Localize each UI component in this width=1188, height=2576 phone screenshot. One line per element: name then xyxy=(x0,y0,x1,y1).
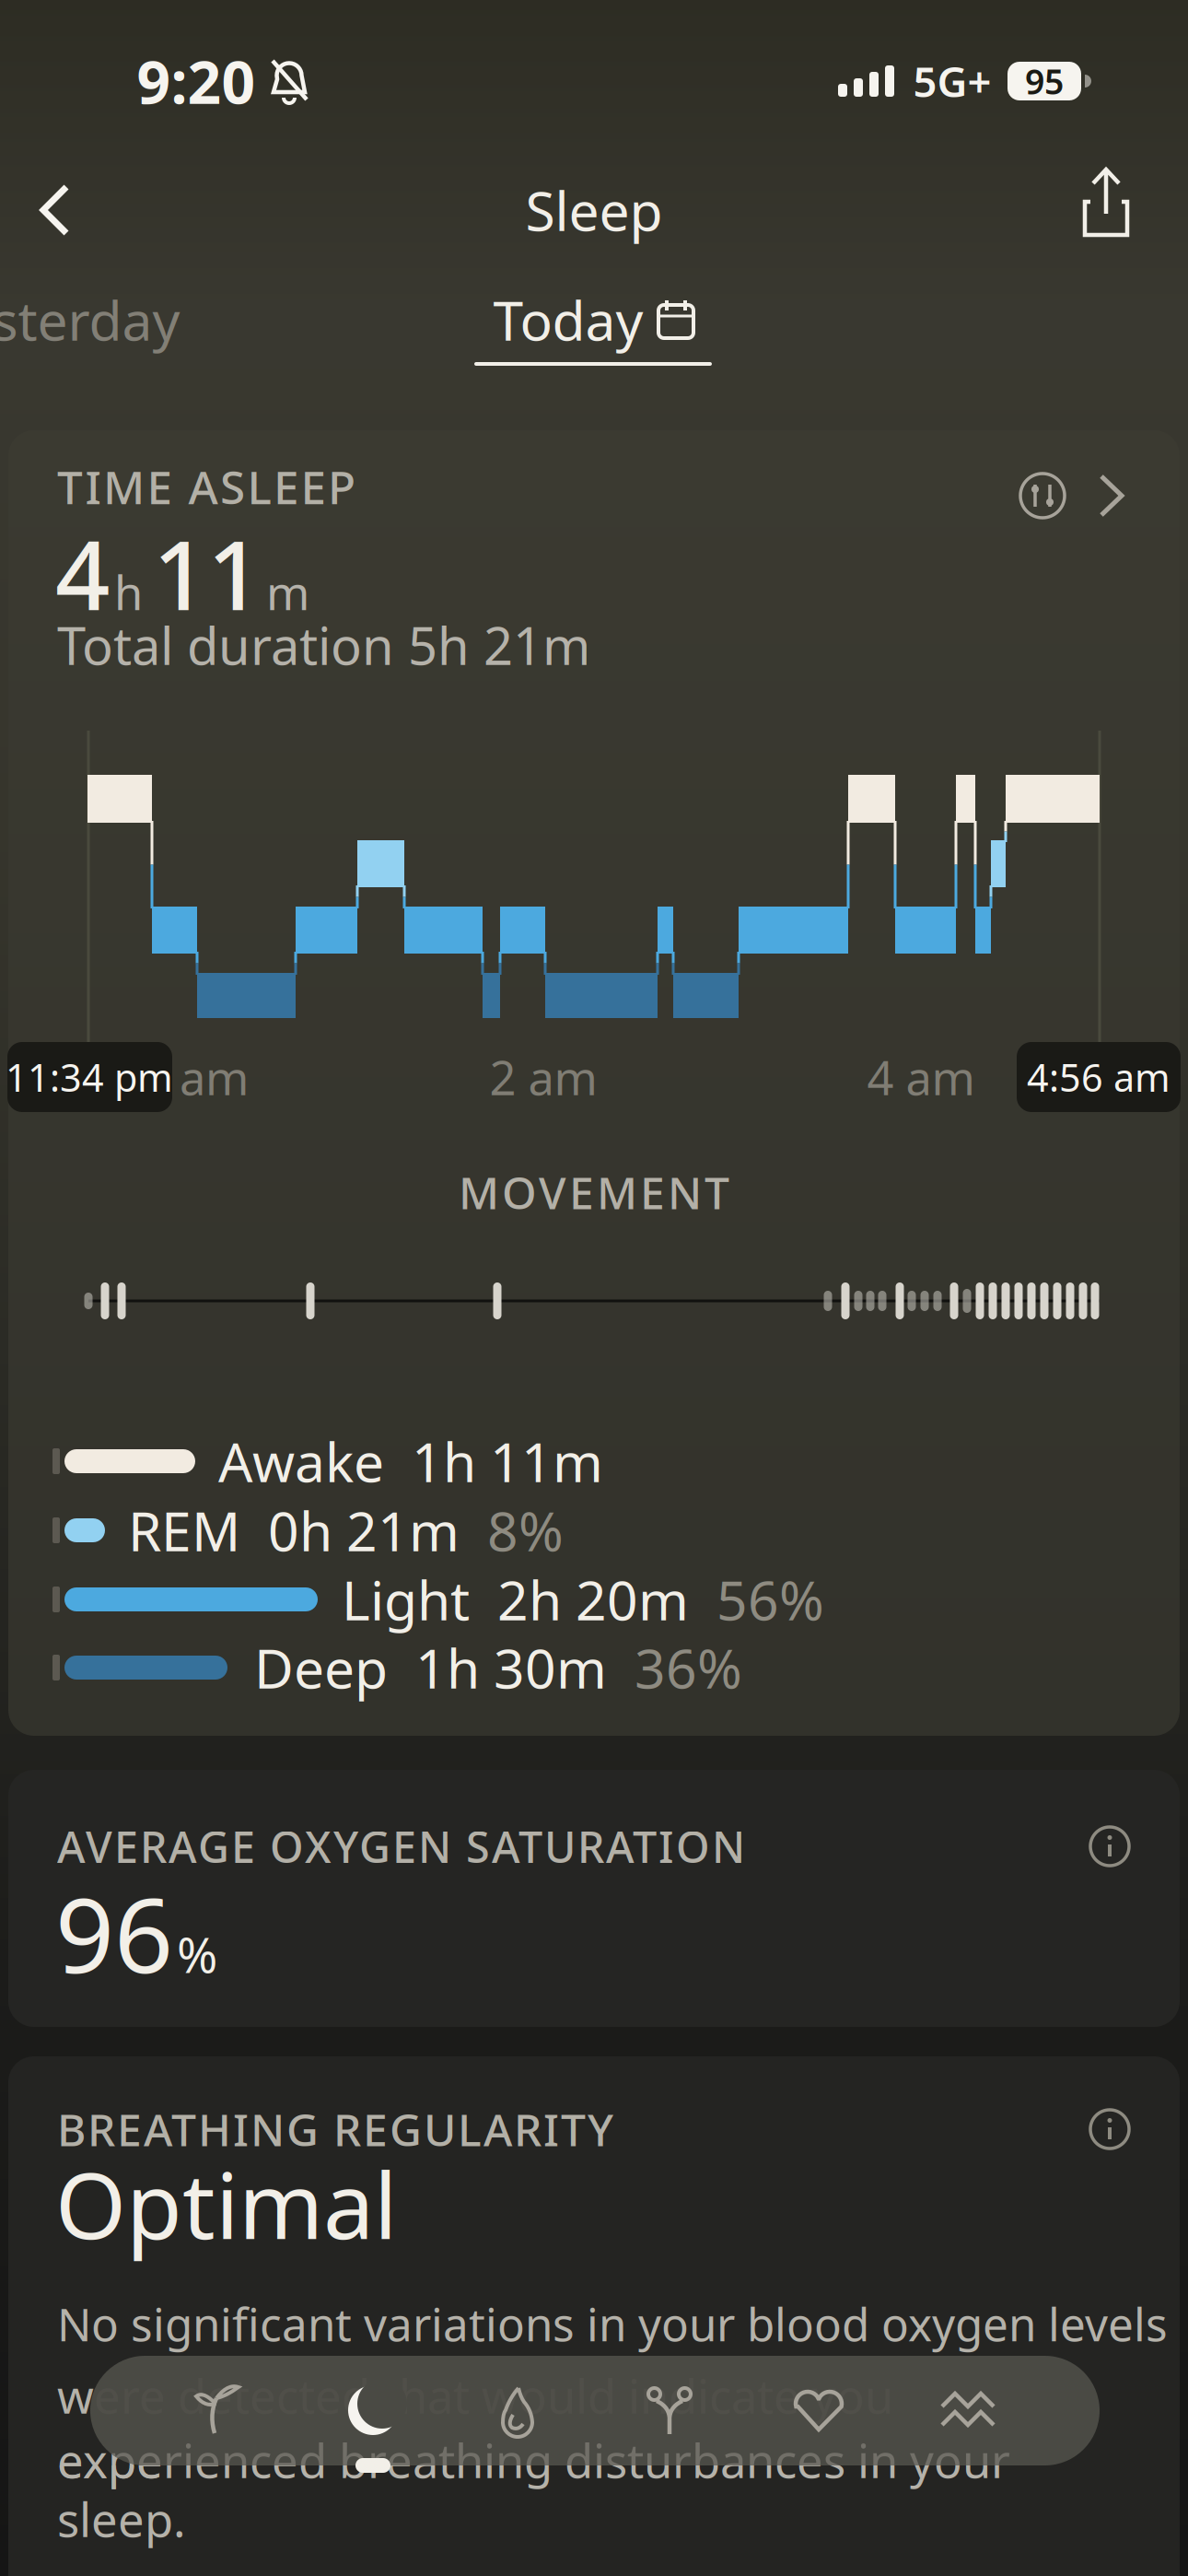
staticText: 1h 30m xyxy=(415,1632,607,1703)
staticText: REM xyxy=(128,1494,240,1566)
staticText: 36% xyxy=(635,1632,742,1703)
staticText: 12 am xyxy=(114,1046,249,1108)
staticText: No significant variations in your blood … xyxy=(57,2293,1168,2354)
staticText: 95 xyxy=(1025,58,1064,104)
staticText: 2 am xyxy=(489,1046,597,1108)
staticText: 4:56 am xyxy=(1027,1052,1171,1102)
staticText: AVERAGE OXYGEN SATURATION xyxy=(57,1818,745,1875)
staticText: TIME ASLEEP xyxy=(57,456,355,517)
staticText: MOVEMENT xyxy=(459,1163,729,1221)
staticText: Light xyxy=(342,1563,470,1635)
staticText: were detected that would indicate you xyxy=(57,2364,893,2426)
staticText: Sleep xyxy=(525,174,663,246)
staticText: 11:34 pm xyxy=(6,1052,173,1102)
staticText: 5G+ xyxy=(913,53,991,109)
staticText: 8% xyxy=(487,1494,564,1566)
staticText: 1h 11m xyxy=(412,1425,603,1497)
staticText: w xyxy=(57,2364,94,2426)
staticText: expe xyxy=(57,2429,163,2491)
staticText: 96 xyxy=(55,1864,173,2001)
staticText: BREATHING REGULARITY xyxy=(57,2100,613,2158)
staticText: Total duration 5h 21m xyxy=(57,611,590,679)
staticText: Optimal xyxy=(55,2143,397,2264)
staticText: h xyxy=(114,561,143,623)
staticText: sleep. xyxy=(57,2488,186,2550)
staticText: Today xyxy=(493,284,643,356)
staticText: 56% xyxy=(716,1563,824,1635)
staticText: 11 xyxy=(153,509,262,637)
staticText: Awake xyxy=(218,1425,384,1497)
staticText: % xyxy=(177,1921,217,1987)
staticText: 4 am xyxy=(867,1046,975,1108)
staticText: 9:20 xyxy=(137,42,256,120)
staticText: Yesterday xyxy=(0,284,180,356)
staticText: 4 xyxy=(55,509,110,637)
staticText: experienced breathing disturbances in yo… xyxy=(57,2429,1010,2491)
staticText: 2h 20m xyxy=(497,1563,689,1635)
staticText: experienced breathing disturbances in yo… xyxy=(57,2429,1010,2491)
staticText: Deep xyxy=(254,1632,388,1703)
staticText: 0h 21m xyxy=(268,1494,460,1566)
staticText: m xyxy=(266,561,309,623)
